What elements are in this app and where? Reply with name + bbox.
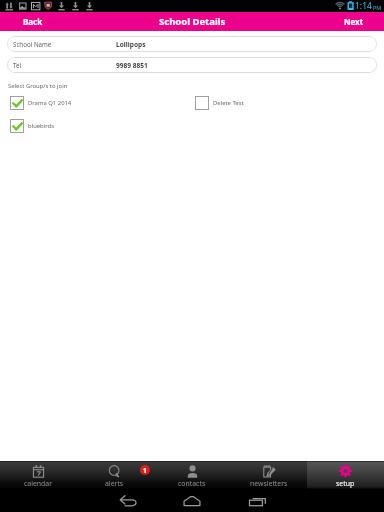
staticText: setup [336,479,355,488]
button[interactable]: bluebirds [10,119,55,133]
staticText: Lollipops [116,40,146,49]
staticText: bluebirds [28,122,55,130]
button[interactable]: Back [104,489,152,512]
staticText: School Name [13,40,52,48]
staticText: calendar [24,479,53,488]
button[interactable]: alerts [76,461,153,489]
staticText: 1 [143,466,147,475]
staticText: Next [344,16,364,27]
button[interactable]: Delete Test [195,96,244,110]
staticText: School Details [159,15,226,28]
button[interactable]: calendar [0,461,76,489]
staticText: alerts [105,479,124,488]
button[interactable]: Home [168,489,216,512]
button[interactable]: School Name [7,36,377,52]
staticText: PM [373,4,382,11]
button[interactable]: setup [307,461,384,489]
button[interactable]: contacts [153,461,230,489]
staticText: 1:14 [355,0,372,12]
staticText: Select Group/s to join [8,82,68,90]
staticText: contacts [178,479,206,488]
button[interactable]: Recent apps [233,489,281,512]
button[interactable]: Drama Q1 2014 [10,96,72,110]
button[interactable]: newsletters [230,461,307,489]
staticText: Tel [13,61,22,69]
staticText: Drama Q1 2014 [28,99,72,107]
staticText: Back [23,16,43,27]
button[interactable]: Back [0,12,66,31]
staticText: newsletters [250,479,288,488]
button[interactable]: Next [324,12,384,31]
button[interactable]: Tel [7,57,377,73]
staticText: 9989 8851 [116,61,148,70]
staticText: Delete Test [213,99,244,107]
